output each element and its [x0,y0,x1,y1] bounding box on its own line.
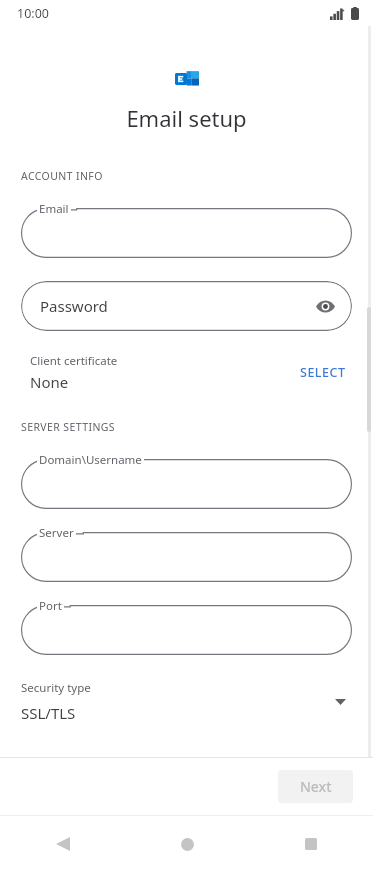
staticText: Port [39,598,62,614]
button[interactable]: Domain\Username [21,459,352,509]
button[interactable]: Password [21,281,352,331]
button[interactable]: Email [21,208,352,258]
button[interactable]: Client certificate [21,353,352,392]
button[interactable]: Security type [21,680,352,723]
other: Security type dropdown [328,690,352,714]
staticText: Next [300,777,332,796]
button[interactable]: Show password [312,293,338,319]
staticText: Server [39,525,74,541]
button[interactable]: Server [21,532,352,582]
staticText: Email [39,201,69,217]
staticText: None [30,372,69,392]
staticText: Email setup [0,103,373,133]
button[interactable]: Home [125,816,249,872]
button[interactable]: Port [21,605,352,655]
staticText: ACCOUNT INFO [21,169,103,183]
staticText: Client certificate [30,353,118,369]
staticText: Password [40,296,108,316]
staticText: Security type [21,680,91,696]
staticText: 10:00 [17,5,49,22]
button[interactable]: SELECT [294,358,352,387]
staticText: SERVER SETTINGS [21,420,115,434]
button[interactable]: Recent apps [249,816,373,872]
staticText: SELECT [300,364,346,381]
button[interactable]: Back [0,816,125,872]
staticText: SSL/TLS [21,703,76,723]
button[interactable]: Next [278,770,353,803]
staticText: Domain\Username [39,452,142,468]
